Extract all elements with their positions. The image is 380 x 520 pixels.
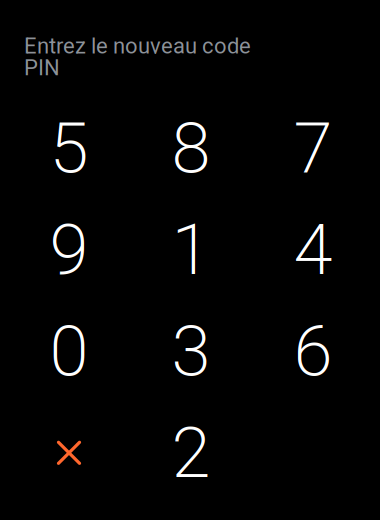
staticText: 4 xyxy=(293,208,332,291)
button[interactable]: 0 xyxy=(8,301,130,402)
button[interactable]: 2 xyxy=(130,402,252,504)
button[interactable]: 9 xyxy=(8,199,130,301)
staticText: 8 xyxy=(171,107,210,190)
staticText: 2 xyxy=(171,411,210,494)
staticText: Entrez le nouveau code PIN xyxy=(24,33,251,81)
staticText: 7 xyxy=(293,107,332,190)
button[interactable]: 8 xyxy=(130,98,252,199)
staticText: 9 xyxy=(49,208,88,291)
staticText: 6 xyxy=(293,310,332,393)
button[interactable]: 1 xyxy=(130,199,252,301)
staticText: 3 xyxy=(171,310,210,393)
button[interactable]: 5 xyxy=(8,98,130,199)
button[interactable]: Delete xyxy=(8,402,130,504)
button[interactable]: 6 xyxy=(252,301,374,402)
button[interactable]: 7 xyxy=(252,98,374,199)
staticText: 5 xyxy=(49,107,88,190)
button[interactable]: 4 xyxy=(252,199,374,301)
button[interactable]: 3 xyxy=(130,301,252,402)
staticText: 0 xyxy=(49,310,88,393)
staticText: 1 xyxy=(171,208,210,291)
